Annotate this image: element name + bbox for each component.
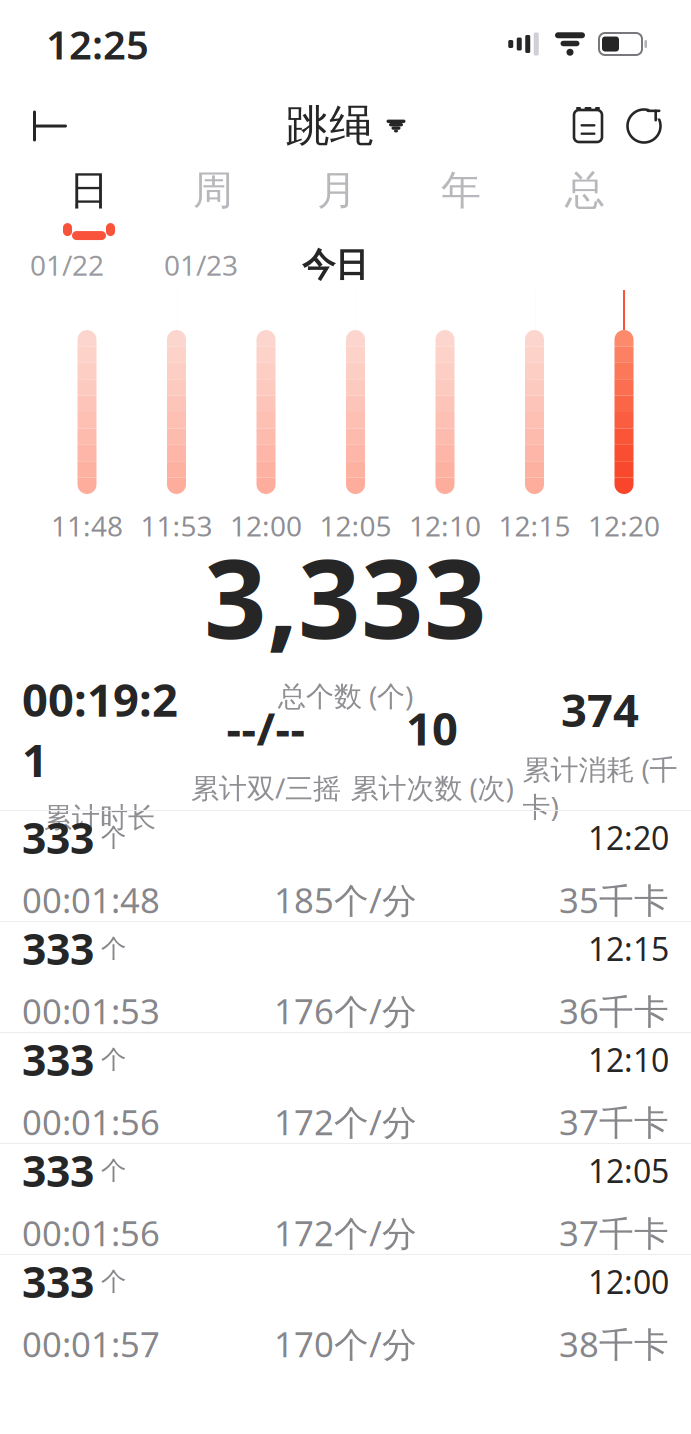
- staticText: 日: [69, 166, 109, 215]
- staticText: 12:00: [588, 1260, 669, 1303]
- staticText: 累计次数 (次): [350, 769, 513, 806]
- button[interactable]: 01/23: [134, 244, 268, 286]
- staticText: 333: [22, 920, 94, 977]
- button[interactable]: 年: [399, 168, 523, 238]
- button[interactable]: 总: [523, 168, 647, 238]
- staticText: 333: [22, 1031, 94, 1088]
- button[interactable]: 333: [0, 1032, 691, 1143]
- staticText: 333: [22, 1142, 94, 1199]
- staticText: 00:01:53: [22, 988, 160, 1034]
- button[interactable]: 月: [275, 168, 399, 238]
- staticText: 12:10: [588, 1038, 669, 1081]
- staticText: 累计时长: [44, 800, 156, 835]
- staticText: 个: [101, 1044, 126, 1075]
- staticText: 00:01:56: [22, 1099, 160, 1145]
- button[interactable]: 周: [151, 168, 275, 238]
- button[interactable]: 今日: [268, 244, 402, 286]
- staticText: 374: [561, 679, 639, 739]
- staticText: 37千卡: [559, 1210, 669, 1256]
- staticText: 11:53: [140, 507, 212, 544]
- staticText: 3,333: [204, 524, 487, 669]
- staticText: 01/22: [30, 246, 104, 284]
- staticText: 总: [565, 166, 605, 215]
- staticText: 11:48: [51, 507, 123, 544]
- button[interactable]: Back: [18, 94, 82, 158]
- staticText: 00:01:56: [22, 1210, 160, 1256]
- staticText: 185个/分: [274, 877, 417, 923]
- staticText: 10: [406, 698, 458, 758]
- staticText: 累计双/三摇: [191, 769, 341, 806]
- button[interactable]: Records: [561, 94, 615, 158]
- staticText: 170个/分: [274, 1321, 417, 1367]
- staticText: 个: [101, 1155, 126, 1186]
- staticText: 累计消耗 (千卡): [522, 750, 677, 825]
- staticText: 总个数 (个): [278, 677, 413, 714]
- staticText: 个: [101, 822, 126, 853]
- staticText: 12:05: [319, 507, 391, 544]
- staticText: 个: [101, 1266, 126, 1297]
- staticText: 个: [101, 933, 126, 964]
- staticText: 00:19:21: [22, 669, 178, 789]
- staticText: 12:00: [230, 507, 302, 544]
- staticText: 38千卡: [559, 1321, 669, 1367]
- staticText: 172个/分: [274, 1099, 417, 1145]
- button[interactable]: 333: [0, 1143, 691, 1254]
- staticText: 12:15: [588, 927, 669, 970]
- staticText: 35千卡: [559, 877, 669, 923]
- staticText: --/--: [226, 698, 305, 758]
- staticText: 01/23: [164, 246, 238, 284]
- staticText: 年: [441, 166, 481, 215]
- staticText: 12:10: [409, 507, 481, 544]
- button[interactable]: 日: [27, 168, 151, 238]
- button[interactable]: 333: [0, 1254, 691, 1365]
- button[interactable]: 跳绳: [275, 94, 415, 158]
- staticText: 333: [22, 809, 94, 866]
- button[interactable]: 333: [0, 921, 691, 1032]
- staticText: 37千卡: [559, 1099, 669, 1145]
- staticText: 12:20: [588, 816, 669, 859]
- staticText: 月: [317, 166, 357, 215]
- staticText: 172个/分: [274, 1210, 417, 1256]
- staticText: 周: [193, 166, 233, 215]
- staticText: 12:15: [498, 507, 570, 544]
- staticText: 333: [22, 1253, 94, 1310]
- staticText: 今日: [302, 244, 368, 285]
- staticText: 36千卡: [559, 988, 669, 1034]
- staticText: 12:05: [588, 1149, 669, 1192]
- staticText: 00:01:57: [22, 1321, 160, 1367]
- staticText: 176个/分: [274, 988, 417, 1034]
- staticText: 00:01:48: [22, 877, 160, 923]
- staticText: 12:25: [46, 17, 149, 70]
- button[interactable]: 01/22: [0, 244, 134, 286]
- staticText: 跳绳: [285, 99, 373, 153]
- staticText: 12:20: [588, 507, 660, 544]
- button[interactable]: 333: [0, 810, 691, 921]
- button[interactable]: Sync: [615, 94, 673, 158]
